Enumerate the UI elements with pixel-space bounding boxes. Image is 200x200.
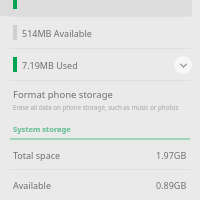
button[interactable]: [0, 0, 200, 16]
button[interactable]: Total space: [0, 140, 200, 169]
staticText: 0.89GB: [156, 179, 187, 191]
staticText: 7.19MB Used: [22, 59, 78, 71]
staticText: Total space: [13, 149, 61, 161]
staticText: System storage: [13, 124, 71, 134]
button[interactable]: Format phone storage: [0, 81, 200, 119]
staticText: 514MB Available: [22, 27, 92, 39]
staticText: Available: [13, 179, 51, 191]
staticText: Erase all data on phone storage, such as…: [13, 103, 179, 111]
staticText: Format phone storage: [13, 88, 113, 101]
button[interactable]: 7.19MB Used: [0, 49, 200, 80]
button[interactable]: 514MB Available: [0, 17, 200, 48]
button[interactable]: Expand: [174, 56, 192, 74]
button[interactable]: Available: [0, 170, 200, 199]
staticText: 1.97GB: [156, 149, 187, 161]
